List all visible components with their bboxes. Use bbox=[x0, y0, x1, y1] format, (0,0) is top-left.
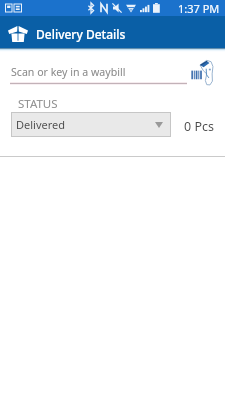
staticText: Delivery Details bbox=[36, 26, 126, 42]
staticText: Delivered bbox=[16, 117, 65, 132]
button[interactable]: Open delivery box bbox=[4, 22, 31, 45]
staticText: STATUS bbox=[18, 96, 58, 112]
button[interactable]: Scan barcode bbox=[189, 58, 217, 86]
staticText: Scan or key in a waybill bbox=[11, 65, 126, 79]
button[interactable]: Delivered bbox=[11, 112, 171, 137]
staticText: 1:37 PM bbox=[178, 1, 220, 16]
staticText: 0 Pcs bbox=[184, 118, 214, 135]
